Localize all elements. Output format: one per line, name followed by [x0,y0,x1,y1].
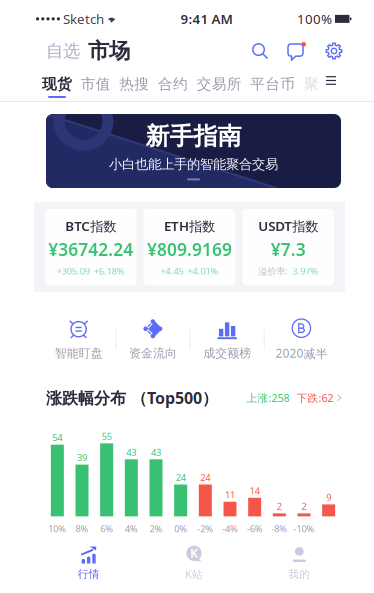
staticText: 100% [297,10,332,28]
button[interactable]: 资金流向 [116,319,189,360]
staticText: 上涨:258 [246,391,289,405]
button[interactable]: 成交额榜 [190,319,264,360]
staticText: ¥7.3 [271,238,306,261]
button[interactable]: 热搜 [119,72,149,100]
staticText: ¥36742.24 [48,238,133,261]
staticText: +4.45 [160,265,183,277]
button[interactable]: 智能盯盘 [42,319,115,360]
button[interactable]: Search [242,37,278,65]
staticText: 小白也能上手的智能聚合交易 [109,156,278,172]
staticText: 合约 [158,75,188,93]
button[interactable]: 市值 [81,72,111,100]
staticText: 4% [125,522,138,535]
staticText: 新手指南 [145,122,241,151]
staticText: -6% [247,522,263,535]
button[interactable]: More categories [319,72,336,91]
staticText: -2% [197,522,213,535]
button[interactable]: K [141,540,247,581]
staticText: 涨跌幅分布 （Top500） [46,387,218,408]
staticText: USDT指数 [258,217,318,235]
staticText: 2020减半 [275,345,327,361]
button[interactable]: 我的 [247,541,352,581]
staticText: Sketch [63,10,104,28]
button[interactable]: Messages [278,36,316,66]
staticText: 43 [151,446,161,458]
button[interactable]: USDT指数 [242,209,334,285]
button[interactable]: 现货 [42,72,72,100]
button[interactable]: BTC指数 [45,209,137,285]
staticText: 交易所 [197,75,242,93]
button[interactable]: 2020减半 [265,318,338,361]
button[interactable]: 市场 [88,33,130,69]
button[interactable]: 行情 [36,541,141,581]
staticText: 自选 [46,40,80,62]
staticText: 55 [102,430,112,442]
staticText: +6.18% [94,265,125,277]
staticText: 6% [100,522,113,535]
staticText: 2% [149,522,162,535]
staticText: 2 [277,500,282,512]
staticText: 聚 [304,75,319,93]
staticText: 市场 [88,38,130,64]
staticText: 3.97% [292,265,318,277]
button[interactable]: ETH指数 [144,209,235,285]
staticText: 资金流向 [129,346,177,360]
staticText: 行情 [78,568,100,581]
button[interactable]: Settings [316,37,342,65]
staticText: 我的 [288,568,310,581]
staticText: 14 [250,484,260,497]
button[interactable]: 自选 [46,35,88,67]
staticText: 24 [176,471,186,483]
staticText: 下跌:62 [296,391,333,405]
staticText: K站 [185,567,203,581]
staticText: 9 [326,491,331,503]
button[interactable]: 合约 [158,72,188,100]
staticText: -8% [271,522,287,535]
staticText: -4% [222,522,238,535]
button[interactable]: 平台币 [250,72,295,100]
staticText: 市值 [81,75,111,93]
staticText: 9:41 AM [180,10,232,28]
staticText: 现货 [42,75,72,93]
staticText: 热搜 [119,75,149,93]
button[interactable]: 新手指南 [46,114,341,188]
staticText: 成交额榜 [203,346,251,360]
staticText: K [190,545,198,561]
staticText: ETH指数 [164,217,215,235]
staticText: 平台币 [250,75,295,93]
staticText: 溢价率: [258,265,288,277]
staticText: 智能盯盘 [55,346,103,360]
staticText: +305.09 [57,265,90,277]
button[interactable]: 交易所 [197,72,242,100]
staticText: -10% [293,522,314,535]
staticText: +4.01% [187,265,218,277]
staticText: 54 [52,431,62,444]
staticText: 8% [75,522,88,535]
staticText: 10% [48,522,66,535]
staticText: 39 [77,451,87,464]
staticText: 43 [126,446,136,458]
staticText: 2 [301,500,306,512]
staticText: BTC指数 [65,217,116,235]
staticText: 11 [225,488,235,501]
staticText: ¥809.9169 [147,238,232,261]
staticText: 24 [200,471,210,483]
staticText: 0% [174,522,187,535]
